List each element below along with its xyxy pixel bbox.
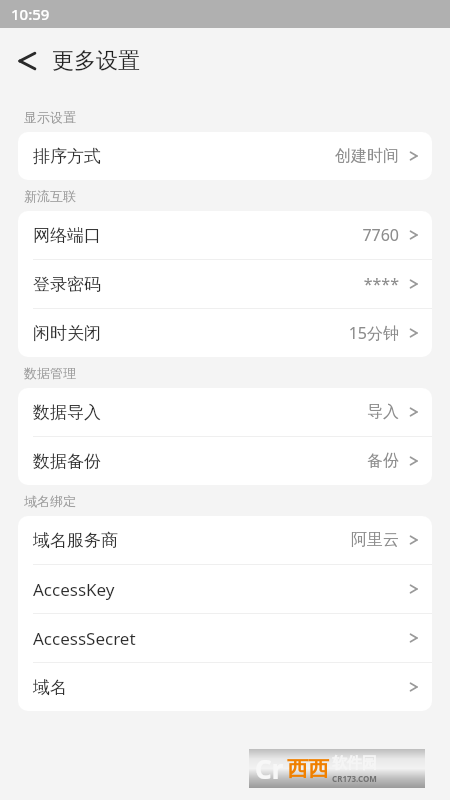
staticText: 新流互联 — [24, 188, 76, 204]
staticText: 10:59 — [11, 4, 50, 24]
staticText: AccessSecret — [33, 627, 136, 650]
staticText: 数据管理 — [24, 365, 76, 381]
staticText: CR173.COM — [332, 773, 377, 784]
staticText: 软件园 — [332, 754, 377, 773]
staticText: 15分钟 — [348, 322, 399, 344]
button[interactable]: Back — [6, 41, 46, 81]
staticText: 导入 — [367, 402, 399, 422]
staticText: 更多设置 — [52, 47, 140, 75]
button[interactable]: AccessSecret — [18, 614, 432, 662]
staticText: 网络端口 — [33, 225, 101, 246]
staticText: Cr — [255, 751, 284, 786]
staticText: 域名绑定 — [24, 493, 76, 509]
staticText: 闲时关闭 — [33, 323, 101, 344]
button[interactable]: 域名服务商 — [18, 516, 432, 564]
staticText: 阿里云 — [351, 530, 399, 550]
staticText: 西西 — [287, 756, 329, 782]
staticText: 数据备份 — [33, 451, 101, 472]
staticText: AccessKey — [33, 578, 115, 601]
staticText: 备份 — [367, 451, 399, 471]
button[interactable]: 数据导入 — [18, 388, 432, 436]
staticText: **** — [363, 273, 399, 295]
staticText: 显示设置 — [24, 109, 76, 125]
staticText: 域名 — [33, 677, 67, 698]
button[interactable]: 闲时关闭 — [18, 309, 432, 357]
button[interactable]: AccessKey — [18, 565, 432, 613]
staticText: 创建时间 — [335, 146, 399, 166]
button[interactable]: 网络端口 — [18, 211, 432, 259]
staticText: 域名服务商 — [33, 530, 118, 551]
staticText: 登录密码 — [33, 274, 101, 295]
staticText: 7760 — [362, 224, 399, 246]
staticText: 数据导入 — [33, 402, 101, 423]
button[interactable]: 排序方式 — [18, 132, 432, 180]
button[interactable]: 数据备份 — [18, 437, 432, 485]
button[interactable]: 登录密码 — [18, 260, 432, 308]
button[interactable]: 域名 — [18, 663, 432, 711]
staticText: 排序方式 — [33, 146, 101, 167]
